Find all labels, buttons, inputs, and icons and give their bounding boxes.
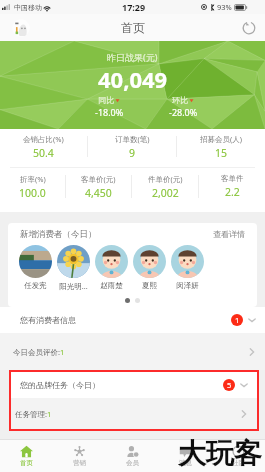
staticText: -18.0% bbox=[95, 106, 124, 118]
staticText: 大玩客 bbox=[178, 436, 262, 468]
staticText: 招募会员(人) bbox=[200, 134, 242, 144]
button[interactable]: 首页 bbox=[0, 440, 53, 472]
button[interactable]: 营销 bbox=[53, 440, 106, 472]
button[interactable]: 会销占比(%) bbox=[0, 129, 87, 164]
button[interactable]: 今日会员评价:1 bbox=[0, 333, 265, 370]
staticText: -28.0% bbox=[169, 106, 198, 118]
staticText: 您的品牌任务（今日） bbox=[20, 380, 100, 390]
button[interactable]: 您有消费者信息 bbox=[0, 307, 265, 333]
button[interactable]: 社区 bbox=[212, 440, 265, 472]
staticText: 您有消费者信息 bbox=[20, 315, 76, 325]
staticText: 折率(%) bbox=[20, 174, 46, 184]
staticText: 40,049 bbox=[98, 64, 168, 94]
staticText: 同比 bbox=[98, 95, 114, 105]
staticText: 昨日战果(元) bbox=[107, 51, 158, 63]
button[interactable]: 夏熙 bbox=[130, 245, 168, 290]
staticText: 查看详情 bbox=[213, 229, 245, 239]
staticText: 93% bbox=[217, 2, 232, 12]
staticText: 会销占比(%) bbox=[23, 134, 64, 144]
button[interactable]: Profile bbox=[12, 19, 30, 37]
staticText: 订单数(笔) bbox=[115, 134, 150, 144]
staticText: 社区 bbox=[232, 459, 245, 467]
staticText: 2.2 bbox=[225, 185, 240, 199]
staticText: 环比 bbox=[172, 95, 188, 105]
button[interactable]: 赵雨楚 bbox=[92, 245, 130, 290]
button[interactable]: 客单件 bbox=[199, 168, 265, 205]
staticText: 客单件 bbox=[221, 174, 244, 183]
staticText: 闵泽妍 bbox=[176, 281, 199, 290]
button[interactable]: 任务管理:1 bbox=[11, 398, 257, 429]
button[interactable]: 任发宪 bbox=[16, 245, 54, 290]
staticText: 1 bbox=[235, 315, 240, 325]
staticText: 今日会员评价:1 bbox=[13, 347, 65, 357]
button[interactable]: 您的品牌任务（今日） bbox=[11, 372, 257, 398]
staticText: 中国移动 bbox=[14, 3, 42, 12]
button[interactable]: 查看详情 bbox=[213, 229, 245, 239]
staticText: 任发宪 bbox=[24, 281, 47, 290]
staticText: 客单价(元) bbox=[81, 174, 116, 184]
staticText: 阳光明... bbox=[59, 281, 88, 291]
staticText: 会员 bbox=[126, 459, 139, 467]
button[interactable]: 客单价(元) bbox=[66, 168, 131, 205]
staticText: 消息 bbox=[179, 459, 192, 467]
staticText: 5 bbox=[227, 380, 232, 390]
button[interactable]: 消息 bbox=[159, 440, 212, 472]
staticText: 赵雨楚 bbox=[100, 281, 123, 290]
staticText: 2,002 bbox=[152, 186, 179, 200]
button[interactable]: 招募会员(人) bbox=[177, 129, 265, 164]
staticText: 新增消费者（今日） bbox=[20, 229, 97, 240]
staticText: 15 bbox=[215, 146, 228, 160]
staticText: 50.4 bbox=[33, 146, 54, 160]
button[interactable]: 会员 bbox=[106, 440, 159, 472]
staticText: 17:29 bbox=[122, 1, 146, 13]
staticText: 夏熙 bbox=[142, 281, 157, 290]
staticText: 件单价(元) bbox=[148, 174, 183, 184]
button[interactable]: 闵泽妍 bbox=[168, 245, 206, 290]
staticText: 100.0 bbox=[19, 186, 46, 200]
button[interactable]: 件单价(元) bbox=[132, 168, 198, 205]
button[interactable]: 阳光明... bbox=[54, 245, 92, 291]
staticText: 首页 bbox=[20, 459, 33, 467]
button[interactable]: 订单数(笔) bbox=[88, 129, 176, 164]
button[interactable]: 折率(%) bbox=[0, 168, 65, 205]
staticText: 首页 bbox=[121, 20, 145, 35]
staticText: 4,450 bbox=[85, 186, 112, 200]
staticText: 任务管理:1 bbox=[15, 409, 52, 419]
staticText: 9 bbox=[129, 146, 136, 160]
staticText: 营销 bbox=[73, 459, 86, 467]
button[interactable]: Refresh bbox=[239, 18, 258, 37]
